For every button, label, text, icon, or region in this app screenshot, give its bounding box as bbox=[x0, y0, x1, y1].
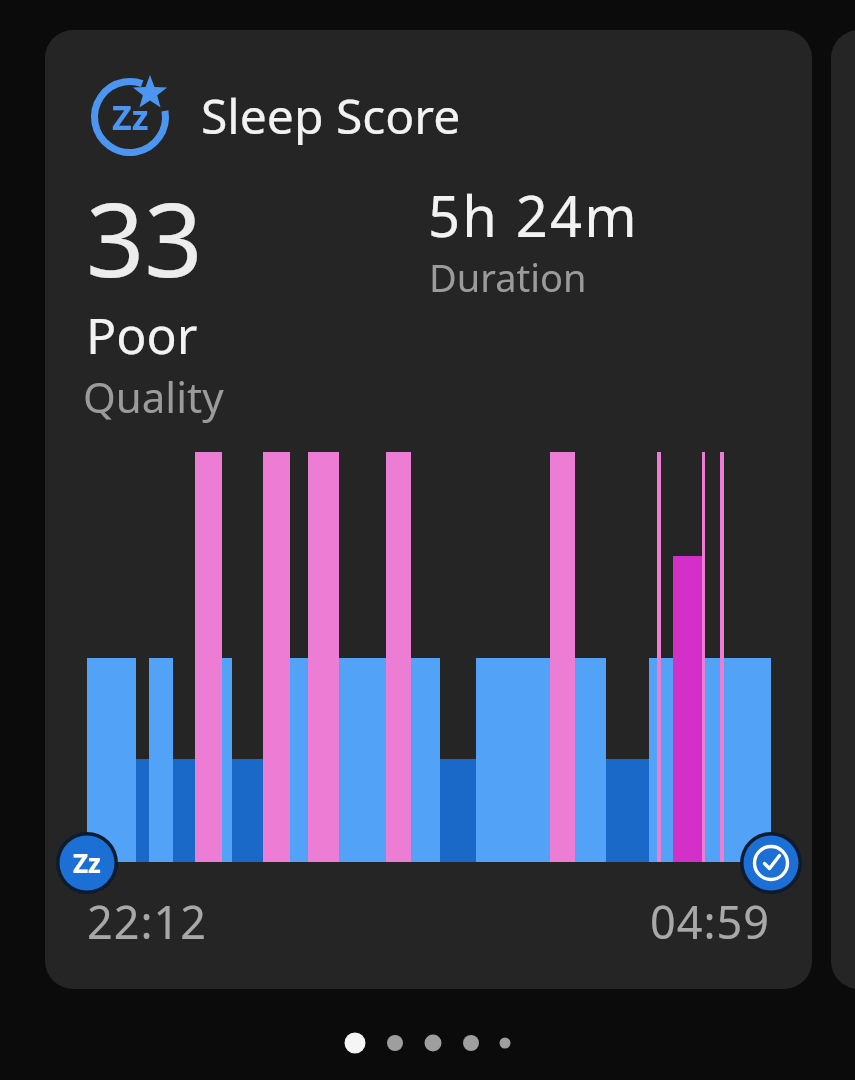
staticText: Zz bbox=[112, 94, 149, 140]
staticText: Duration bbox=[429, 251, 587, 303]
staticText: Sleep Score bbox=[201, 83, 461, 148]
button[interactable]: Sleep Score bbox=[45, 30, 812, 989]
staticText: Quality bbox=[83, 368, 224, 425]
staticText: Poor bbox=[86, 301, 198, 369]
staticText: Zz bbox=[73, 845, 101, 880]
staticText: 22:12 bbox=[87, 891, 208, 952]
staticText: 5h 24m bbox=[428, 177, 639, 253]
staticText: 04:59 bbox=[650, 891, 771, 952]
staticText: 33 bbox=[86, 168, 203, 307]
